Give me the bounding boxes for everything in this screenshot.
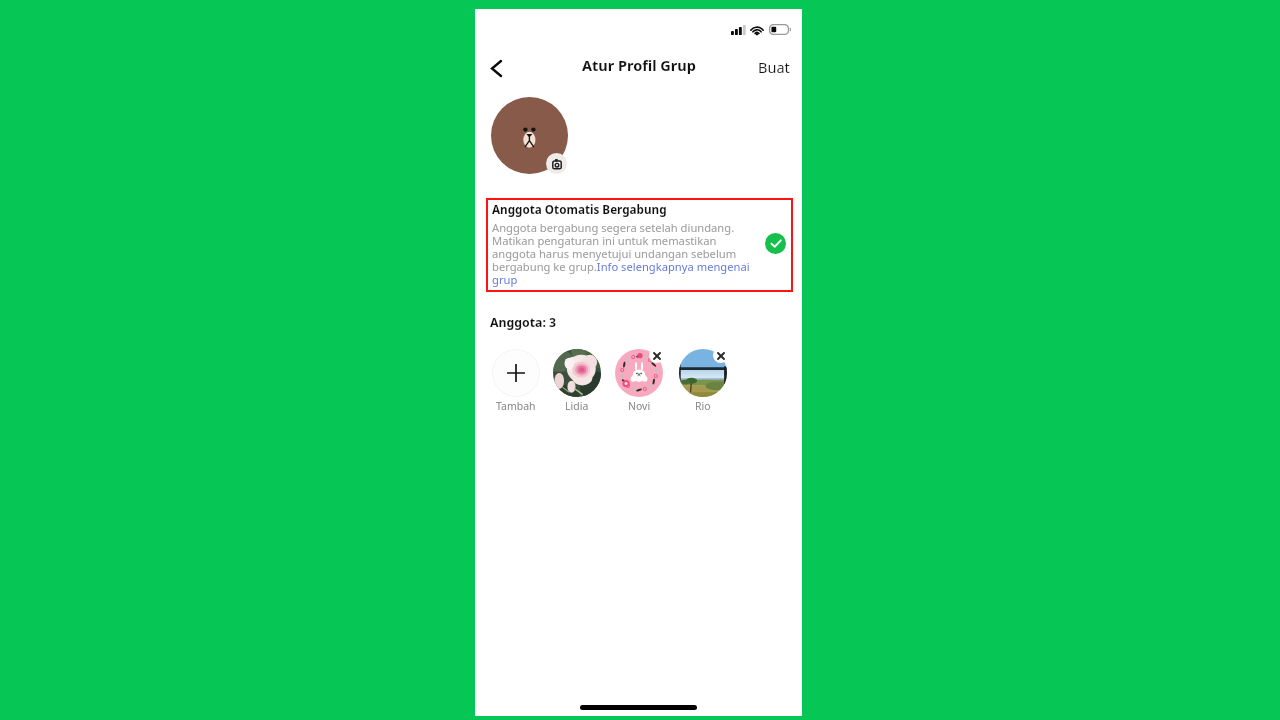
button[interactable]: Buat [750, 52, 798, 82]
staticText: Anggota Otomatis Bergabung [492, 201, 667, 217]
button[interactable]: Remove Rio [672, 349, 734, 413]
button[interactable]: Remove Novi [649, 348, 664, 363]
button[interactable]: Tambah [485, 349, 547, 413]
staticText: Lidia [565, 399, 589, 413]
button[interactable]: Remove Novi [608, 349, 670, 413]
button[interactable]: Remove Rio [713, 348, 728, 363]
button[interactable]: Change group photo [491, 97, 568, 174]
staticText: Buat [758, 57, 790, 77]
button[interactable]: Change photo [546, 153, 567, 174]
button[interactable]: Anggota Otomatis Bergabung [486, 198, 793, 292]
staticText: Tambah [496, 399, 536, 413]
staticText: Atur Profil Grup [582, 55, 696, 75]
staticText: Rio [695, 399, 711, 413]
staticText: Novi [628, 399, 651, 413]
button[interactable]: Back [479, 51, 513, 85]
staticText: Anggota bergabung segera setelah diundan… [492, 220, 754, 288]
button[interactable]: Auto join enabled [765, 233, 786, 254]
staticText: Anggota: 3 [490, 314, 557, 331]
button[interactable]: Lidia [546, 349, 608, 413]
